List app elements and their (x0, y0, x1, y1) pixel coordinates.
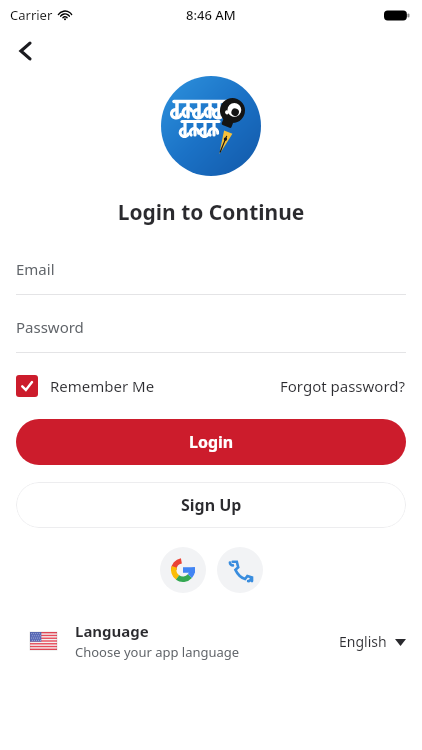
staticText: Login to Continue (0, 198, 422, 227)
button[interactable]: Email (0, 259, 422, 295)
button[interactable]: Login (16, 419, 406, 465)
staticText: 8:46 AM (186, 6, 236, 24)
button[interactable]: Sign in with phone number (217, 547, 263, 593)
button[interactable]: Sign Up (16, 482, 406, 528)
button[interactable]: Sign in with Google (160, 547, 206, 593)
button[interactable]: Remember Me (16, 375, 155, 397)
staticText: Carrier (10, 6, 53, 24)
staticText: Email (16, 259, 55, 279)
staticText: Language (75, 621, 149, 641)
staticText: Sign Up (181, 494, 242, 516)
button[interactable]: Back (6, 31, 46, 71)
button[interactable]: Forgot password? (280, 376, 406, 396)
staticText: Remember Me (50, 376, 155, 396)
button[interactable]: Password (0, 317, 422, 353)
staticText: Password (16, 317, 84, 337)
staticText: English (339, 632, 387, 651)
staticText: Forgot password? (280, 376, 406, 396)
staticText: Choose your app language (75, 643, 240, 661)
staticText: Login (189, 431, 234, 453)
button[interactable]: Language (0, 615, 422, 667)
